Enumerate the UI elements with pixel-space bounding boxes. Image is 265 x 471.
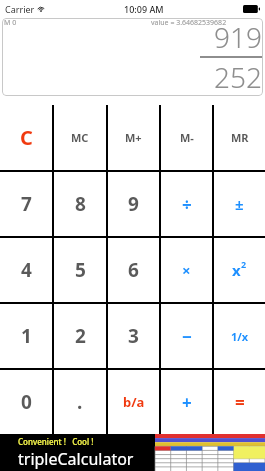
button[interactable]: MC <box>54 105 106 170</box>
staticText: 8 <box>75 191 86 217</box>
button[interactable]: 6 <box>108 238 159 302</box>
staticText: MR <box>231 130 249 145</box>
staticText: b/a <box>123 393 145 411</box>
staticText: 1 <box>21 323 32 349</box>
staticText: 7 <box>21 191 32 217</box>
staticText: 2 <box>241 258 247 270</box>
button[interactable]: Equals <box>214 370 265 434</box>
staticText: tripleCalculator <box>18 448 134 470</box>
staticText: 252 <box>214 58 262 95</box>
button[interactable]: Plus <box>161 370 212 434</box>
button[interactable]: 5 <box>54 238 106 302</box>
button[interactable]: Reciprocal <box>214 304 265 368</box>
button[interactable]: Multiply <box>161 238 212 302</box>
staticText: . <box>77 389 83 415</box>
staticText: M 0 <box>4 18 17 28</box>
staticText: C <box>20 124 33 151</box>
button[interactable]: 7 <box>0 172 52 236</box>
button[interactable]: 0 <box>0 370 52 434</box>
staticText: 4 <box>21 257 32 283</box>
button[interactable]: Divide <box>161 172 212 236</box>
staticText: Carrier <box>5 3 35 15</box>
staticText: value = 3.64682539682 <box>151 18 227 28</box>
staticText: − <box>182 325 192 348</box>
button[interactable]: 1 <box>0 304 52 368</box>
staticText: + <box>182 391 192 414</box>
button[interactable]: Plus minus <box>214 172 265 236</box>
staticText: 2 <box>75 323 86 349</box>
button[interactable]: 4 <box>0 238 52 302</box>
button[interactable]: Decimal point <box>54 370 106 434</box>
staticText: × <box>182 260 191 280</box>
staticText: 10:09 AM <box>124 3 164 15</box>
button[interactable]: 9 <box>108 172 159 236</box>
staticText: = <box>235 391 245 414</box>
button[interactable]: Square <box>214 238 265 302</box>
staticText: M- <box>180 130 194 145</box>
staticText: 919 <box>214 18 262 56</box>
staticText: 1/x <box>231 329 249 344</box>
button[interactable]: 2 <box>54 304 106 368</box>
staticText: 3 <box>128 323 139 349</box>
button[interactable]: 8 <box>54 172 106 236</box>
button[interactable]: Minus <box>161 304 212 368</box>
staticText: ± <box>235 194 244 214</box>
staticText: 0 <box>21 389 32 415</box>
staticText: 5 <box>75 257 86 283</box>
button[interactable]: C <box>0 105 52 170</box>
button[interactable]: tripleCalculator advertisement <box>0 434 265 471</box>
staticText: M+ <box>125 130 142 145</box>
button[interactable]: M+ <box>108 105 159 170</box>
staticText: 6 <box>128 257 139 283</box>
button[interactable]: M- <box>161 105 212 170</box>
staticText: Convenient ! Cool ! <box>18 436 94 447</box>
staticText: x <box>232 260 241 280</box>
staticText: ÷ <box>182 193 192 216</box>
button[interactable]: 3 <box>108 304 159 368</box>
staticText: MC <box>71 130 89 145</box>
button[interactable]: b/a <box>108 370 159 434</box>
button[interactable]: MR <box>214 105 265 170</box>
staticText: 9 <box>128 191 139 217</box>
